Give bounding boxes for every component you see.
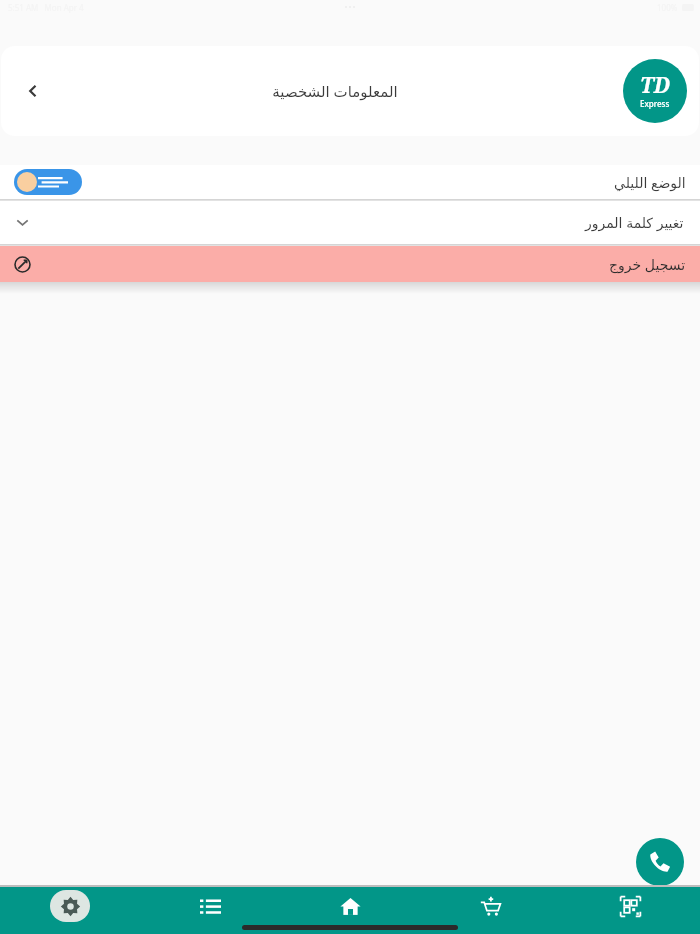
button[interactable]: TD Express logo (623, 59, 687, 123)
button[interactable]: Settings (0, 887, 140, 925)
staticText: الوضع الليلي (614, 173, 686, 192)
staticText: TD (640, 71, 670, 100)
button[interactable]: Back (15, 73, 51, 109)
staticText: Express (640, 98, 670, 109)
other: Night mode toggle (14, 169, 82, 195)
button[interactable]: تغيير كلمة المرور (0, 201, 700, 244)
staticText: تسجيل خروج (609, 255, 686, 274)
button[interactable]: Night mode toggle (0, 165, 700, 199)
button[interactable]: Orders (140, 887, 280, 925)
button[interactable]: Scan QR code (560, 887, 700, 925)
staticText: تغيير كلمة المرور (585, 213, 684, 232)
button[interactable]: Add to cart (420, 887, 560, 925)
staticText: المعلومات الشخصية (272, 81, 398, 101)
button[interactable]: تسجيل خروج (0, 246, 700, 282)
button[interactable]: Home (280, 887, 420, 925)
button[interactable]: Call (636, 838, 684, 886)
